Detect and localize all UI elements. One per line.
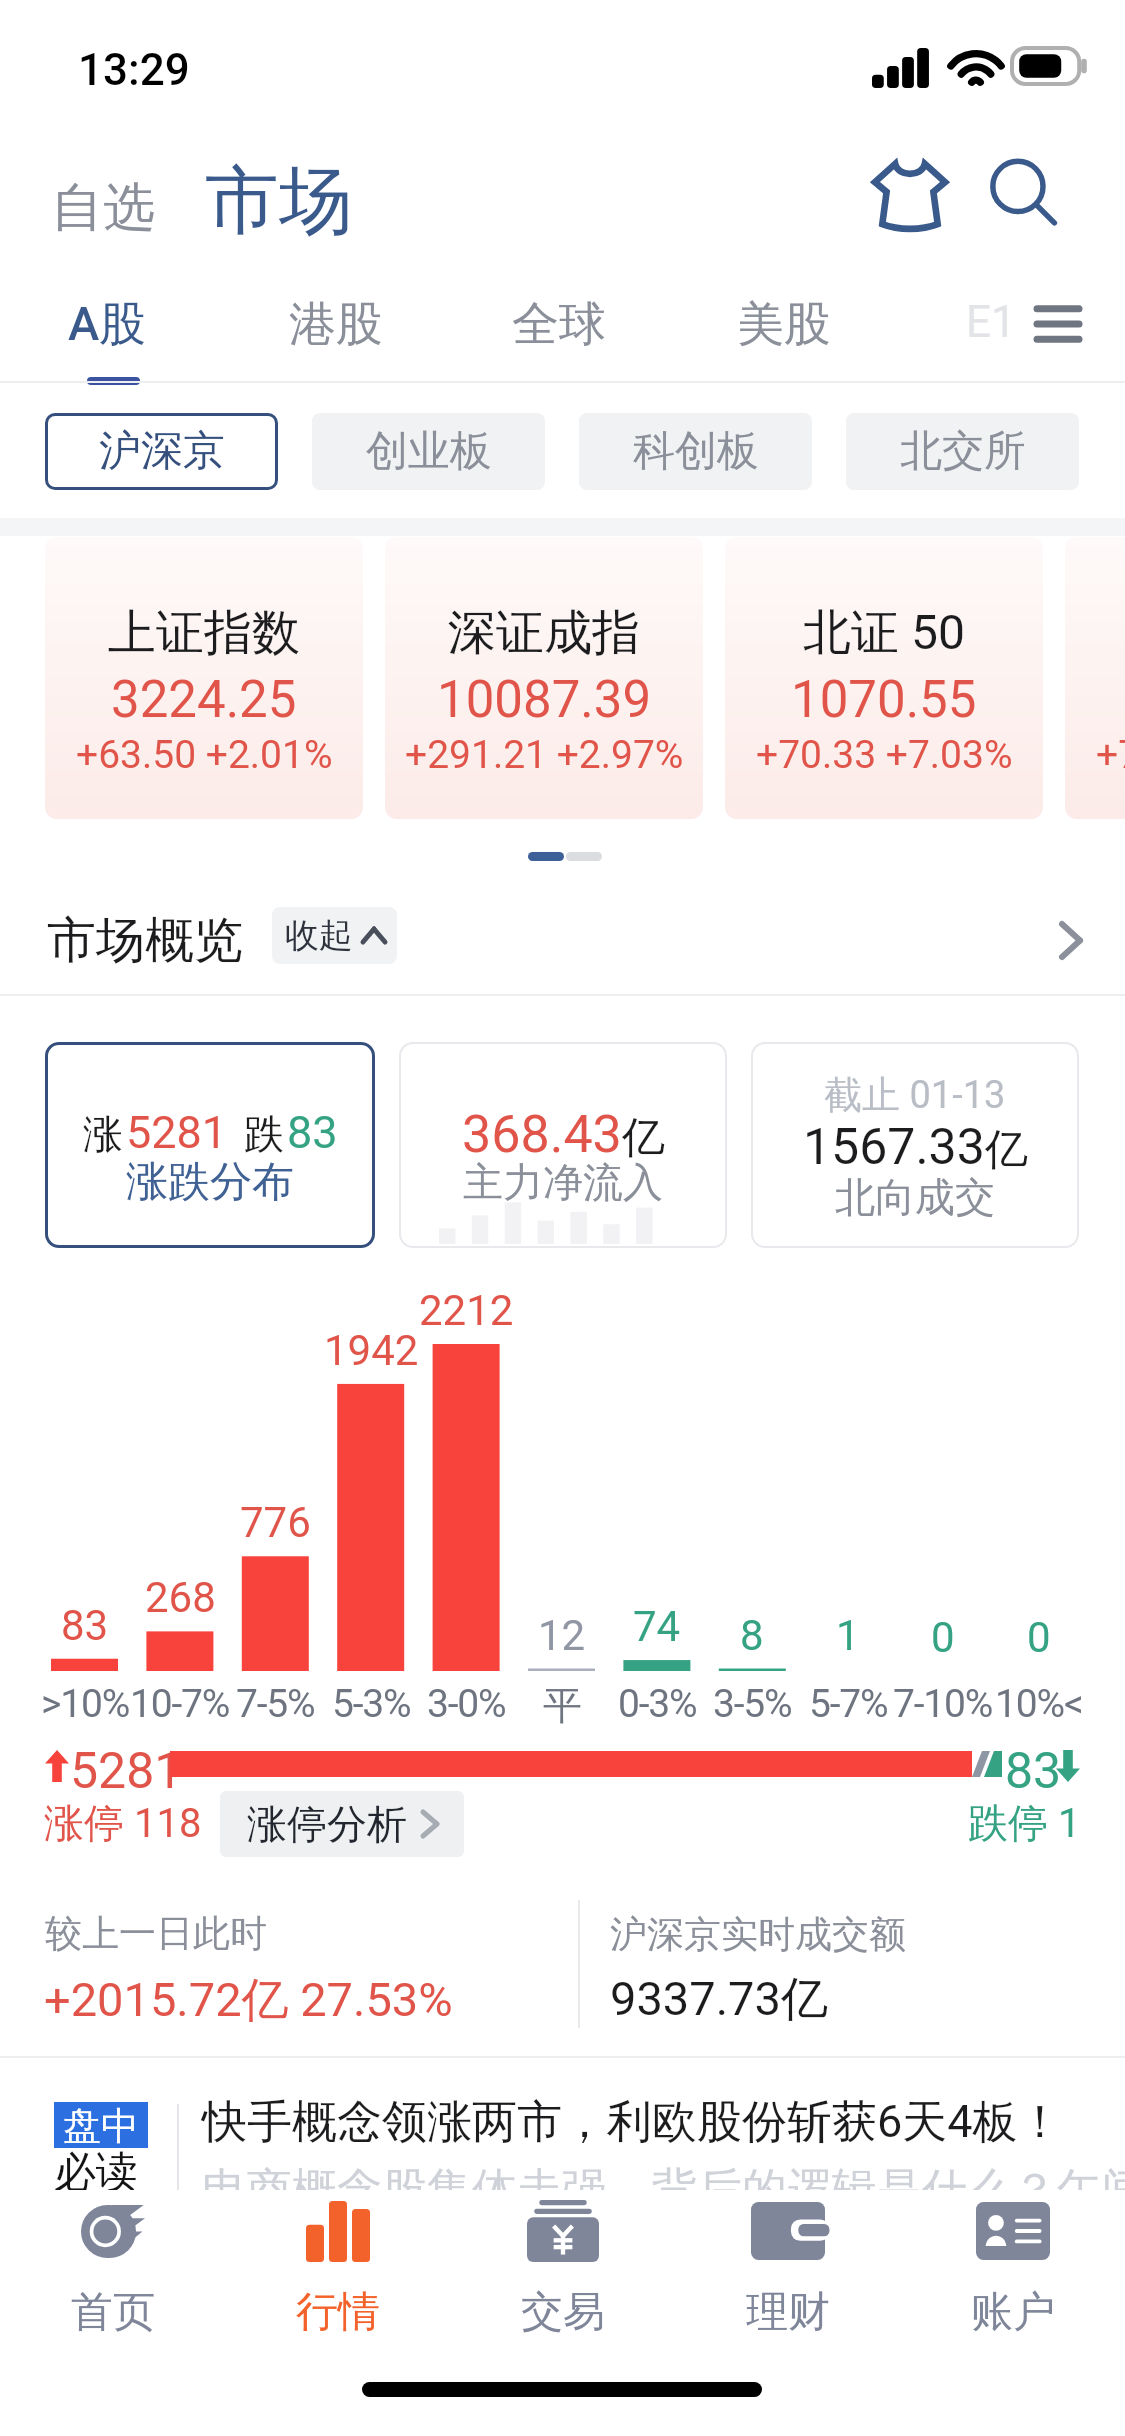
button[interactable]: 深证成指 xyxy=(385,537,703,819)
button[interactable]: 收起 xyxy=(272,907,397,964)
staticText: 1942 xyxy=(324,1326,419,1375)
staticText: 平 xyxy=(543,1681,581,1730)
staticText: 北证 50 xyxy=(803,603,965,663)
staticText: 2212 xyxy=(419,1286,514,1335)
button[interactable]: 北交所 xyxy=(846,413,1079,490)
staticText: 涨跌分布 xyxy=(126,1156,294,1209)
staticText: 涨停分析 xyxy=(247,1799,407,1849)
button[interactable]: 行情 xyxy=(225,2190,450,2366)
staticText: 交易 xyxy=(521,2286,605,2339)
staticText: 市场 xyxy=(205,155,353,248)
staticText: 涨 xyxy=(83,1109,123,1159)
staticText: 快手概念领涨两市，利欧股份斩获6天4板！ xyxy=(202,2094,1063,2151)
staticText: 必读 xyxy=(54,2146,138,2199)
staticText: 9337.73亿 xyxy=(610,1970,828,2029)
staticText: 1070.55 xyxy=(791,670,977,730)
staticText: A股 xyxy=(68,295,147,354)
staticText: 5281 xyxy=(126,1106,228,1159)
staticText: 跌停 1 xyxy=(968,1798,1081,1848)
button[interactable]: 截止 01-13 xyxy=(751,1042,1079,1248)
staticText: 13:29 xyxy=(78,44,190,96)
staticText: 沪深京实时成交额 xyxy=(610,1911,906,1958)
button[interactable]: 科创板 xyxy=(579,413,812,490)
button[interactable]: 创业板指 xyxy=(1065,537,1125,819)
staticText: 5-3% xyxy=(332,1681,411,1727)
staticText: +291.21 +2.97% xyxy=(405,732,684,778)
staticText: 776 xyxy=(240,1498,311,1547)
button[interactable]: 北证 50 xyxy=(725,537,1043,819)
button[interactable]: Search xyxy=(976,146,1072,242)
staticText: 账户 xyxy=(971,2286,1055,2339)
button[interactable]: 上证指数 xyxy=(45,537,363,819)
staticText: 涨停 118 xyxy=(44,1798,202,1848)
staticText: +71.02 +3.32% xyxy=(1096,732,1125,778)
staticText: >10% xyxy=(41,1681,130,1727)
staticText: 全球 xyxy=(512,295,606,354)
staticText: 亿 xyxy=(622,1111,665,1165)
staticText: 7-10% xyxy=(893,1681,993,1727)
staticText: 深证成指 xyxy=(448,603,640,663)
staticText: 市场概览 xyxy=(47,910,243,972)
staticText: 首页 xyxy=(71,2286,155,2339)
staticText: 10087.39 xyxy=(437,670,652,730)
staticText: 收起 xyxy=(285,914,353,957)
button[interactable]: 涨 xyxy=(45,1042,375,1248)
staticText: 创业板 xyxy=(366,425,492,478)
staticText: 7-5% xyxy=(236,1681,315,1727)
button[interactable]: 账户 xyxy=(900,2190,1125,2366)
button[interactable]: 368.43 xyxy=(399,1042,727,1248)
staticText: 较上一日此时 xyxy=(45,1910,267,1957)
staticText: 83 xyxy=(1005,1742,1062,1798)
staticText: 1567.33 xyxy=(803,1118,985,1177)
staticText: +2015.72亿 27.53% xyxy=(44,1971,453,2030)
staticText: 跌 xyxy=(244,1109,284,1159)
staticText: E1 xyxy=(966,296,1016,348)
staticText: 268 xyxy=(145,1573,216,1622)
staticText: 10%< xyxy=(995,1681,1083,1727)
staticText: 理财 xyxy=(746,2286,830,2339)
staticText: 截止 01-13 xyxy=(824,1071,1006,1119)
button[interactable]: 市场 xyxy=(195,149,363,254)
staticText: 0 xyxy=(1027,1613,1051,1662)
staticText: 83 xyxy=(61,1601,109,1650)
staticText: 0 xyxy=(931,1613,955,1662)
staticText: 5281 xyxy=(70,1742,183,1798)
staticText: 亿 xyxy=(985,1123,1028,1177)
button[interactable]: More xyxy=(1031,900,1111,980)
button[interactable]: 理财 xyxy=(675,2190,900,2366)
staticText: 3-5% xyxy=(713,1681,792,1727)
button[interactable]: 交易 xyxy=(450,2190,675,2366)
staticText: 12 xyxy=(538,1611,586,1660)
staticText: 5-7% xyxy=(809,1681,888,1727)
button[interactable]: 港股 xyxy=(263,279,409,370)
button[interactable]: More tabs xyxy=(1016,282,1100,366)
button[interactable]: 创业板 xyxy=(312,413,545,490)
button[interactable]: 盘中 xyxy=(0,2058,1125,2190)
button[interactable]: 全球 xyxy=(486,279,632,370)
staticText: 港股 xyxy=(289,295,383,354)
staticText: 368.43 xyxy=(462,1104,622,1165)
staticText: +70.33 +7.03% xyxy=(756,732,1013,778)
staticText: 自选 xyxy=(51,175,155,241)
staticText: 行情 xyxy=(296,2286,380,2339)
button[interactable]: Theme xyxy=(862,146,958,242)
button[interactable]: 首页 xyxy=(0,2190,225,2366)
staticText: +63.50 +2.01% xyxy=(76,732,333,778)
button[interactable]: 自选 xyxy=(37,163,169,253)
staticText: 主力净流入 xyxy=(463,1157,663,1207)
staticText: 盘中 xyxy=(63,2102,139,2148)
staticText: 3224.25 xyxy=(111,670,297,730)
staticText: 83 xyxy=(287,1106,338,1159)
staticText: 电商概念股集体走强，背后的逻辑是什么？午间必 xyxy=(202,2162,1125,2219)
staticText: 科创板 xyxy=(633,425,759,478)
button[interactable]: A股 xyxy=(42,279,173,370)
button[interactable]: 美股 xyxy=(711,279,857,370)
staticText: 8 xyxy=(740,1611,764,1660)
staticText: 0-3% xyxy=(618,1681,697,1727)
staticText: 北向成交 xyxy=(835,1172,995,1222)
button[interactable]: 涨停分析 xyxy=(220,1791,464,1857)
staticText: 沪深京 xyxy=(99,425,225,478)
staticText: 74 xyxy=(633,1602,681,1651)
button[interactable]: 沪深京 xyxy=(45,413,278,490)
staticText: 10-7% xyxy=(130,1681,230,1727)
